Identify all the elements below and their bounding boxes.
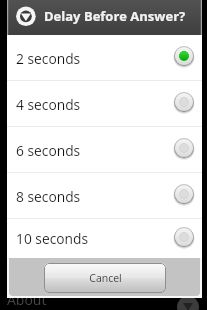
button[interactable]: 10 seconds	[7, 219, 202, 258]
staticText: 10 seconds	[16, 229, 89, 248]
staticText: Cancel	[89, 271, 122, 285]
button[interactable]: 6 seconds	[7, 127, 202, 173]
button[interactable]: 2 seconds	[7, 35, 202, 81]
button[interactable]: 8 seconds	[7, 173, 202, 219]
other: Dialog icon	[7, 0, 202, 35]
button[interactable]: 4 seconds	[7, 81, 202, 127]
staticText: About	[7, 290, 47, 309]
staticText: 4 seconds	[16, 95, 81, 114]
staticText: 8 seconds	[16, 187, 81, 206]
staticText: 2 seconds	[16, 49, 81, 68]
staticText: Delay Before Answer?	[44, 7, 186, 25]
staticText: 6 seconds	[16, 141, 81, 160]
button[interactable]: Cancel	[44, 263, 166, 293]
